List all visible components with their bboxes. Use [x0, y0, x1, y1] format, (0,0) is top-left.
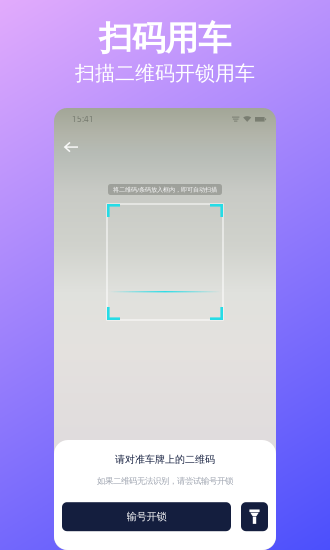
button[interactable]: Flashlight	[241, 502, 268, 531]
staticText: 扫描二维码开锁用车	[75, 61, 255, 85]
button[interactable]: 输号开锁	[62, 502, 231, 531]
staticText: 请对准车牌上的二维码	[115, 453, 215, 466]
staticText: 如果二维码无法识别，请尝试输号开锁	[97, 476, 233, 486]
staticText: 扫码用车	[99, 18, 231, 59]
staticText: 15:41	[72, 114, 94, 124]
staticText: 将二维码/条码放入框内，即可自动扫描	[113, 185, 217, 194]
button[interactable]: Back	[58, 136, 84, 158]
staticText: 输号开锁	[126, 510, 166, 523]
